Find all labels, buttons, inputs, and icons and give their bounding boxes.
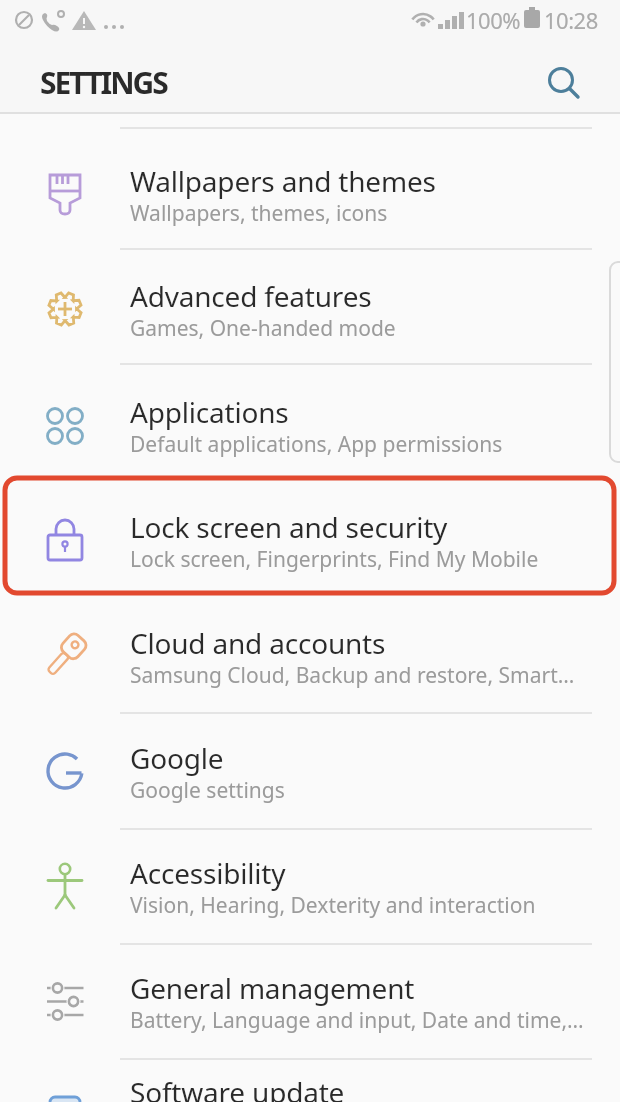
button[interactable]: Advanced features: [0, 243, 620, 358]
button[interactable]: Google: [0, 705, 620, 820]
button[interactable]: Lock screen and security: [0, 474, 620, 589]
staticText: 100%: [466, 5, 521, 35]
staticText: Advanced features: [130, 277, 372, 315]
staticText: Vision, Hearing, Dexterity and interacti…: [130, 891, 536, 920]
button[interactable]: Applications: [0, 359, 620, 474]
staticText: Applications: [130, 393, 289, 431]
staticText: Accessibility: [130, 854, 286, 892]
button[interactable]: Wallpapers and themes: [0, 128, 620, 243]
staticText: General management: [130, 969, 415, 1007]
staticText: Google settings: [130, 776, 285, 805]
staticText: Games, One-handed mode: [130, 314, 396, 343]
staticText: 10:28: [544, 5, 598, 35]
staticText: Wallpapers and themes: [130, 162, 436, 200]
staticText: Cloud and accounts: [130, 624, 386, 662]
staticText: SETTINGS: [40, 62, 167, 103]
button[interactable]: Accessibility: [0, 820, 620, 935]
button[interactable]: Cloud and accounts: [0, 590, 620, 705]
staticText: Default applications, App permissions: [130, 430, 503, 459]
staticText: Battery, Language and input, Date and ti…: [130, 1006, 584, 1035]
staticText: Lock screen, Fingerprints, Find My Mobil…: [130, 545, 539, 574]
staticText: Google: [130, 739, 224, 777]
button[interactable]: General management: [0, 935, 620, 1050]
staticText: Wallpapers, themes, icons: [130, 199, 388, 228]
staticText: Samsung Cloud, Backup and restore, Smart…: [130, 661, 575, 690]
staticText: Lock screen and security: [130, 508, 448, 546]
staticText: Software update: [130, 1073, 345, 1102]
button[interactable]: [535, 55, 595, 110]
button[interactable]: Software update: [0, 1039, 620, 1102]
